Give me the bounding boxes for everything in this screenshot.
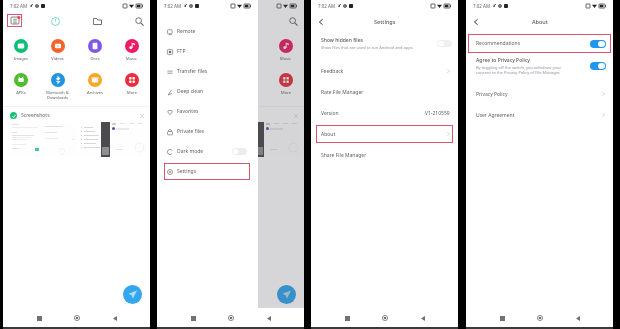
staticText: Rate File Manager (321, 89, 364, 96)
button[interactable]: Dark mode (164, 143, 250, 160)
button[interactable]: Recents (495, 311, 509, 325)
button[interactable] (10, 122, 40, 157)
button[interactable]: Settings (164, 163, 250, 180)
button[interactable]: More (267, 73, 304, 95)
button[interactable]: Back (571, 311, 585, 325)
button[interactable]: Agree to Privacy Policy (476, 57, 606, 75)
button[interactable]: Show hidden files (321, 37, 452, 50)
button[interactable]: Home (533, 311, 547, 325)
button[interactable]: Archives (230, 73, 267, 95)
button[interactable]: Home (70, 311, 84, 325)
button[interactable] (198, 122, 232, 157)
button[interactable] (111, 122, 147, 157)
button[interactable]: Music (113, 39, 150, 61)
button[interactable]: Music (267, 39, 304, 61)
button[interactable]: Favorites (164, 103, 250, 120)
staticText: Docs (90, 56, 100, 61)
button[interactable]: Rate File Manager (316, 83, 453, 101)
button[interactable]: Close (140, 114, 144, 118)
button[interactable]: Version (316, 104, 453, 122)
button[interactable]: Bluetooth & Downloads (193, 73, 230, 100)
button[interactable]: Feedback (316, 62, 453, 80)
button[interactable]: Back (262, 311, 276, 325)
button[interactable]: Docs (230, 39, 267, 61)
staticText: APKs (16, 90, 26, 95)
button[interactable]: Recents (186, 311, 200, 325)
staticText: User Agreement (476, 112, 515, 119)
button[interactable]: Toggle (590, 62, 606, 70)
staticText: Recommendations (476, 40, 521, 47)
button[interactable]: Send (277, 285, 296, 304)
button[interactable]: Share File Manager (316, 146, 453, 164)
button[interactable]: Search (286, 14, 300, 28)
staticText: About (321, 131, 336, 138)
staticText: Archives (87, 90, 103, 95)
staticText: Bluetooth & Downloads (46, 90, 69, 100)
staticText: V1-210559 (425, 110, 450, 117)
staticText: Music (280, 56, 291, 61)
button[interactable] (80, 122, 101, 157)
button[interactable]: Toggle (590, 40, 606, 48)
button[interactable]: Back (416, 311, 430, 325)
button[interactable]: APKs (3, 73, 39, 95)
button[interactable]: Docs (76, 39, 113, 61)
button[interactable]: Dark mode toggle (232, 148, 247, 155)
button[interactable] (234, 122, 255, 157)
button[interactable]: Bluetooth & Downloads (39, 73, 76, 100)
button[interactable]: Close (294, 114, 298, 118)
button[interactable]: Videos (39, 39, 76, 61)
button[interactable]: APKs (157, 73, 193, 95)
staticText: Share File Manager (321, 152, 367, 159)
button[interactable] (255, 122, 264, 157)
button[interactable]: User Agreement (471, 106, 608, 124)
button[interactable]: Recommendations (468, 34, 611, 53)
staticText: Deep clean (177, 88, 204, 95)
button[interactable] (164, 122, 194, 157)
staticText: Show hidden files (321, 37, 363, 44)
button[interactable]: Privacy Policy (471, 85, 608, 103)
button[interactable]: Remote (164, 23, 250, 40)
button[interactable]: Back (470, 16, 482, 28)
staticText: More (281, 90, 291, 95)
button[interactable]: Transfer files (164, 63, 250, 80)
button[interactable]: Images (3, 39, 39, 61)
button[interactable]: Back (315, 16, 327, 28)
button[interactable] (101, 122, 110, 157)
button[interactable]: Back (108, 311, 122, 325)
staticText: 7:02 AM (164, 3, 182, 9)
button[interactable]: More (113, 73, 150, 95)
staticText: Bluetooth & Downloads (200, 90, 223, 100)
button[interactable]: About (316, 125, 453, 143)
button[interactable] (44, 122, 78, 157)
staticText: Dark mode (177, 148, 204, 155)
button[interactable]: Clean (48, 14, 62, 28)
button[interactable]: Archives (76, 73, 113, 95)
button[interactable]: Search (132, 14, 146, 28)
staticText: Version (321, 110, 339, 117)
staticText: Favorites (177, 108, 199, 115)
button[interactable]: Recents (32, 311, 46, 325)
staticText: APKs (170, 90, 180, 95)
button[interactable] (265, 122, 301, 157)
staticText: Remote (177, 28, 196, 35)
button[interactable]: Folders (90, 14, 104, 28)
button[interactable]: Images (157, 39, 193, 61)
button[interactable]: FTP (164, 43, 250, 60)
button[interactable]: Send (123, 285, 142, 304)
staticText: Screenshots (21, 112, 50, 119)
staticText: Show files that are used to run Android … (321, 45, 413, 50)
button[interactable]: Private files (164, 123, 250, 140)
button[interactable]: Deep clean (164, 83, 250, 100)
button[interactable]: Home (224, 311, 238, 325)
button[interactable]: Recents (340, 311, 354, 325)
button[interactable]: Show hidden files toggle (437, 40, 452, 47)
button[interactable]: Home (378, 311, 392, 325)
button[interactable]: Menu (7, 14, 22, 27)
